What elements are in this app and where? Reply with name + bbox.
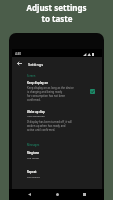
staticText: woken up when has ready and [27,124,66,128]
staticText: Wake up disp [27,110,45,114]
staticText: The House [27,156,39,159]
staticText: Ringtone [27,151,40,155]
staticText: Adjust settings [26,2,87,13]
button[interactable]: Back [12,57,102,70]
staticText: 4:30 [15,52,21,56]
button[interactable]: Recents [77,189,91,200]
staticText: Repeat [27,170,37,174]
button[interactable]: Home [50,189,64,200]
button[interactable]: Back [22,189,36,200]
staticText: Screen [27,74,36,78]
button[interactable] [12,78,102,87]
staticText: Until confirmed [27,114,45,117]
button[interactable] [12,167,102,176]
staticText: confirmed. [27,98,41,102]
staticText: to taste [41,13,73,24]
staticText: active until confirmed. [27,128,56,132]
button[interactable]: Keep display on toggle [90,89,95,94]
staticText: Keep display on [27,81,49,85]
staticText: Keep display on as long as the device [27,86,74,90]
staticText: is charging and being ready [27,90,63,94]
staticText: Messages [27,143,40,147]
staticText: Play exactly [27,175,40,178]
staticText: Settings [28,62,44,67]
button[interactable] [12,148,102,157]
staticText: If display has been turned off, it will [27,120,72,124]
button[interactable] [12,107,102,116]
staticText: for consumption has not been [27,94,66,98]
